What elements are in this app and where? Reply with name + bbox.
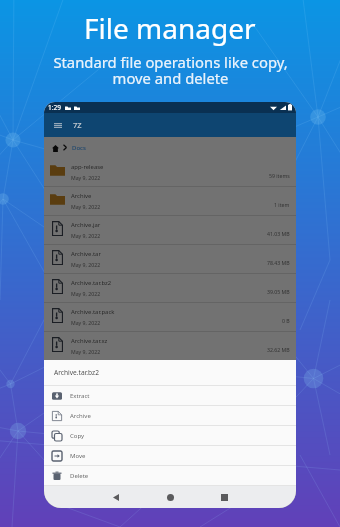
staticText: 1:29 <box>48 103 61 112</box>
staticText: Standard file operations like copy, move… <box>53 52 288 89</box>
staticText: Archive.tar.bz2 <box>54 368 99 377</box>
staticText: Archive.tar.zip <box>71 366 110 374</box>
button[interactable]: Archive.jar <box>44 216 296 244</box>
staticText: 1 item <box>274 201 290 208</box>
staticText: May 9, 2022 <box>71 203 101 210</box>
staticText: Extract <box>70 392 90 400</box>
button[interactable]: Copy <box>44 426 296 445</box>
button[interactable]: Back <box>98 486 134 508</box>
staticText: Archive.jar <box>71 221 101 229</box>
staticText: 32.62 MB <box>267 346 290 353</box>
staticText: May 9, 2022 <box>71 290 101 297</box>
staticText: 59 items <box>269 172 290 179</box>
button[interactable]: Docs <box>72 144 86 152</box>
button[interactable]: app-release <box>44 158 296 186</box>
staticText: Archive <box>70 412 91 420</box>
staticText: File manager <box>84 9 256 47</box>
button[interactable]: Move <box>44 446 296 465</box>
button[interactable]: Open navigation menu <box>51 118 65 132</box>
button[interactable]: Archive <box>44 187 296 215</box>
button[interactable]: Archive.tar.xz <box>44 332 296 360</box>
button[interactable]: Archive.tar.pack <box>44 303 296 331</box>
staticText: May 9, 2022 <box>71 174 101 181</box>
staticText: Copy <box>70 432 85 440</box>
button[interactable]: Home <box>50 143 60 153</box>
staticText: Move <box>70 452 86 460</box>
staticText: Delete <box>70 472 89 480</box>
staticText: May 9, 2022 <box>71 261 101 268</box>
staticText: Archive.tar.pack <box>71 308 115 316</box>
staticText: 41.03 MB <box>267 230 290 237</box>
staticText: May 9, 2022 <box>71 232 101 239</box>
staticText: 78.43 MB <box>267 259 290 266</box>
button[interactable]: Archive.tar.bz2 <box>44 274 296 302</box>
staticText: Archive.tar <box>71 250 101 258</box>
button[interactable]: Archive <box>44 406 296 425</box>
staticText: May 9, 2022 <box>71 319 101 326</box>
staticText: 39.05 MB <box>267 288 290 295</box>
button[interactable]: Delete <box>44 466 296 485</box>
staticText: Archive.tar.xz <box>71 337 108 345</box>
button[interactable]: Archive.tar <box>44 245 296 273</box>
staticText: 0 B <box>282 317 290 324</box>
staticText: May 9, 2022 <box>71 348 101 355</box>
button[interactable]: Archive.tar.zip <box>44 361 296 389</box>
button[interactable]: Home <box>152 486 188 508</box>
button[interactable]: Extract <box>44 386 296 405</box>
staticText: app-release <box>71 163 104 171</box>
staticText: Archive.tar.bz2 <box>71 279 112 287</box>
staticText: 7Z <box>73 120 82 130</box>
button[interactable]: Recent apps <box>206 486 242 508</box>
staticText: Archive <box>71 192 92 200</box>
